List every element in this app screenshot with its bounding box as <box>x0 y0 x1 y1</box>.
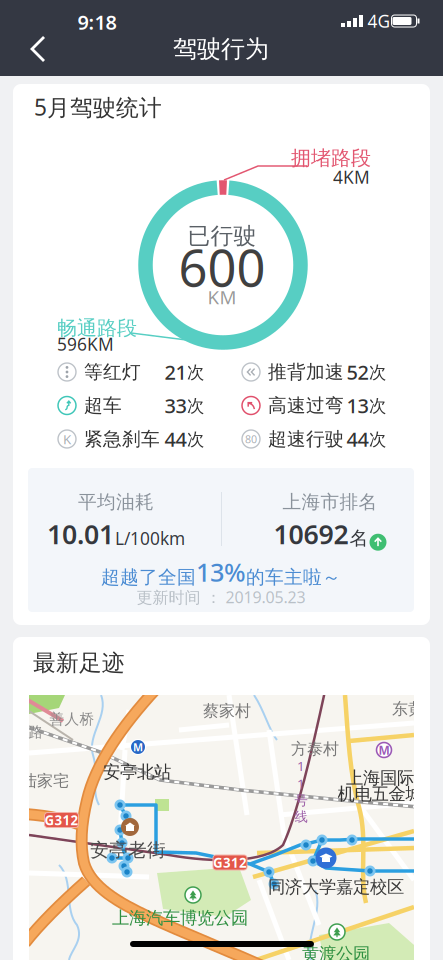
staticText: 的车主啦～ <box>246 566 341 589</box>
staticText: 4KM <box>333 165 370 188</box>
staticText: 次 <box>369 395 386 417</box>
staticText: 44 <box>346 426 368 452</box>
staticText: 9:18 <box>77 9 116 35</box>
staticText: KM <box>207 285 236 309</box>
staticText: 畅通路段 <box>57 316 137 340</box>
staticText: 次 <box>187 362 204 383</box>
staticText: G312 <box>213 854 247 871</box>
staticText: 高速过弯 <box>268 394 344 417</box>
staticText: 次 <box>369 362 386 383</box>
staticText: 13 <box>346 392 368 419</box>
staticText: K <box>63 430 71 448</box>
staticText: 13% <box>196 555 246 589</box>
staticText: 1 <box>297 757 305 775</box>
staticText: 10692 <box>273 516 348 552</box>
staticText: 超越了全国 <box>101 566 196 589</box>
staticText: 善人桥 <box>49 710 94 728</box>
staticText: 平均油耗 <box>78 490 154 513</box>
staticText: 上海市排名 <box>282 490 377 513</box>
staticText: 次 <box>187 429 204 450</box>
button[interactable]: Back <box>0 0 60 76</box>
staticText: 安亭北站 <box>103 761 171 783</box>
staticText: 次 <box>187 395 204 417</box>
staticText: 机电五金城 <box>337 783 422 805</box>
staticText: 44 <box>164 426 186 452</box>
staticText: G312 <box>44 811 78 829</box>
staticText: 线 <box>294 809 307 825</box>
staticText: 拥堵路段 <box>291 146 371 170</box>
staticText: 上海国际 <box>346 767 414 789</box>
staticText: 安亭老街 <box>90 838 166 861</box>
staticText: 推背加速 <box>268 360 344 383</box>
staticText: 已行驶 <box>187 222 256 250</box>
staticText: 600 <box>178 233 265 301</box>
staticText: 陆家宅 <box>21 771 69 791</box>
staticText: 次 <box>369 429 386 450</box>
staticText: 4G <box>367 9 390 32</box>
staticText: 52 <box>346 359 368 385</box>
staticText: 路 <box>28 723 43 741</box>
staticText: 方泰村 <box>291 739 339 759</box>
staticText: 21 <box>164 359 186 385</box>
staticText: 同济大学嘉定校区 <box>268 876 404 898</box>
staticText: L/100km <box>115 527 185 550</box>
staticText: 紧急刹车 <box>84 427 160 450</box>
staticText: 1 <box>297 775 305 792</box>
staticText: 80 <box>245 432 257 446</box>
staticText: 596KM <box>57 332 114 355</box>
staticText: 东黄 <box>392 699 424 719</box>
staticText: 更新时间 ： 2019.05.23 <box>136 586 305 608</box>
staticText: 等红灯 <box>84 360 141 383</box>
staticText: 名 <box>349 527 368 550</box>
staticText: M <box>378 742 389 758</box>
staticText: 超速行驶 <box>268 427 344 450</box>
staticText: 号 <box>294 792 307 809</box>
staticText: 驾驶行为 <box>173 34 269 64</box>
staticText: 最新足迹 <box>33 649 125 677</box>
staticText: 上海汽车博览公园 <box>112 907 248 929</box>
staticText: 蔡家村 <box>203 701 251 721</box>
staticText: 33 <box>164 392 186 419</box>
staticText: 黄渡公园 <box>302 943 370 960</box>
staticText: 10.01 <box>47 516 114 552</box>
staticText: 5月驾驶统计 <box>34 92 162 122</box>
staticText: 超车 <box>84 394 122 417</box>
staticText: M <box>133 740 143 754</box>
